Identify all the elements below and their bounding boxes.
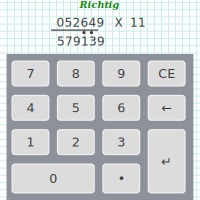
staticText: CE	[158, 66, 175, 81]
button[interactable]: 2	[57, 129, 95, 155]
button[interactable]: 5	[57, 95, 95, 121]
staticText: 0	[49, 171, 57, 186]
button[interactable]: 3	[102, 129, 140, 155]
staticText: 11	[130, 15, 146, 29]
button[interactable]: Enter	[148, 129, 186, 193]
staticText: 5	[72, 100, 80, 115]
button[interactable]: 6	[102, 95, 140, 121]
staticText: 3	[117, 135, 125, 149]
staticText: X	[115, 15, 123, 29]
staticText: 4	[26, 100, 34, 115]
button[interactable]: 0	[11, 163, 95, 193]
button[interactable]: 4	[11, 95, 49, 121]
staticText: ↵	[161, 154, 172, 169]
button[interactable]: Backspace	[148, 95, 186, 121]
staticText: Richtig	[79, 0, 119, 10]
button[interactable]: Decimal point	[102, 163, 140, 193]
staticText: 579139	[57, 34, 105, 48]
staticText: 2	[72, 135, 80, 149]
button[interactable]: 1	[11, 129, 49, 155]
staticText: 9	[117, 66, 125, 81]
button[interactable]: 7	[11, 60, 49, 86]
staticText: •	[118, 171, 125, 186]
staticText: ←	[161, 100, 172, 115]
button[interactable]: 9	[102, 60, 140, 86]
staticText: 8	[72, 66, 80, 81]
button[interactable]: Clear entry	[148, 60, 186, 86]
staticText: 7	[26, 66, 34, 81]
staticText: 052649	[57, 15, 105, 29]
button[interactable]: 8	[57, 60, 95, 86]
staticText: 6	[117, 100, 125, 115]
staticText: 1	[26, 135, 34, 149]
